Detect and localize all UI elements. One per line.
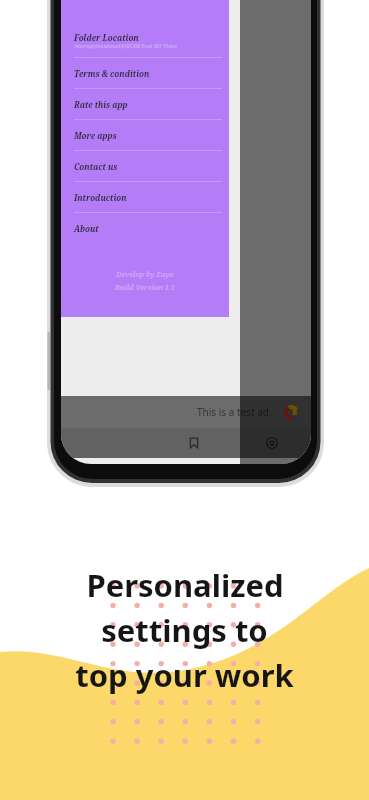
staticText: This is a test ad. (197, 405, 272, 419)
staticText: Introduction (74, 192, 127, 203)
button[interactable]: More apps (61, 120, 229, 151)
button[interactable]: Bookmarks (179, 428, 209, 458)
staticText: Terms & condition (74, 68, 150, 79)
staticText: Build Version 1.1 (115, 283, 175, 293)
button[interactable]: Rate this app (61, 89, 229, 120)
button[interactable]: About (61, 213, 229, 244)
button[interactable]: Folder Location (61, 25, 229, 58)
button[interactable]: Introduction (61, 182, 229, 213)
staticText: settings to (101, 609, 268, 651)
staticText: Develop by Zayo (116, 270, 174, 280)
button[interactable]: Terms & condition (61, 58, 229, 89)
staticText: More apps (74, 130, 117, 141)
staticText: Folder Location (74, 32, 139, 43)
staticText: About (74, 223, 99, 234)
staticText: Contact us (74, 161, 118, 172)
button[interactable]: Contact us (61, 151, 229, 182)
staticText: Personalized (86, 564, 284, 606)
button[interactable]: Settings (257, 428, 287, 458)
button[interactable]: This is a test ad. (61, 396, 311, 428)
staticText: Rate this app (74, 99, 128, 110)
staticText: /storage/emulated/0/DCIM/Tool MT Video (74, 43, 178, 50)
staticText: top your work (75, 654, 294, 696)
